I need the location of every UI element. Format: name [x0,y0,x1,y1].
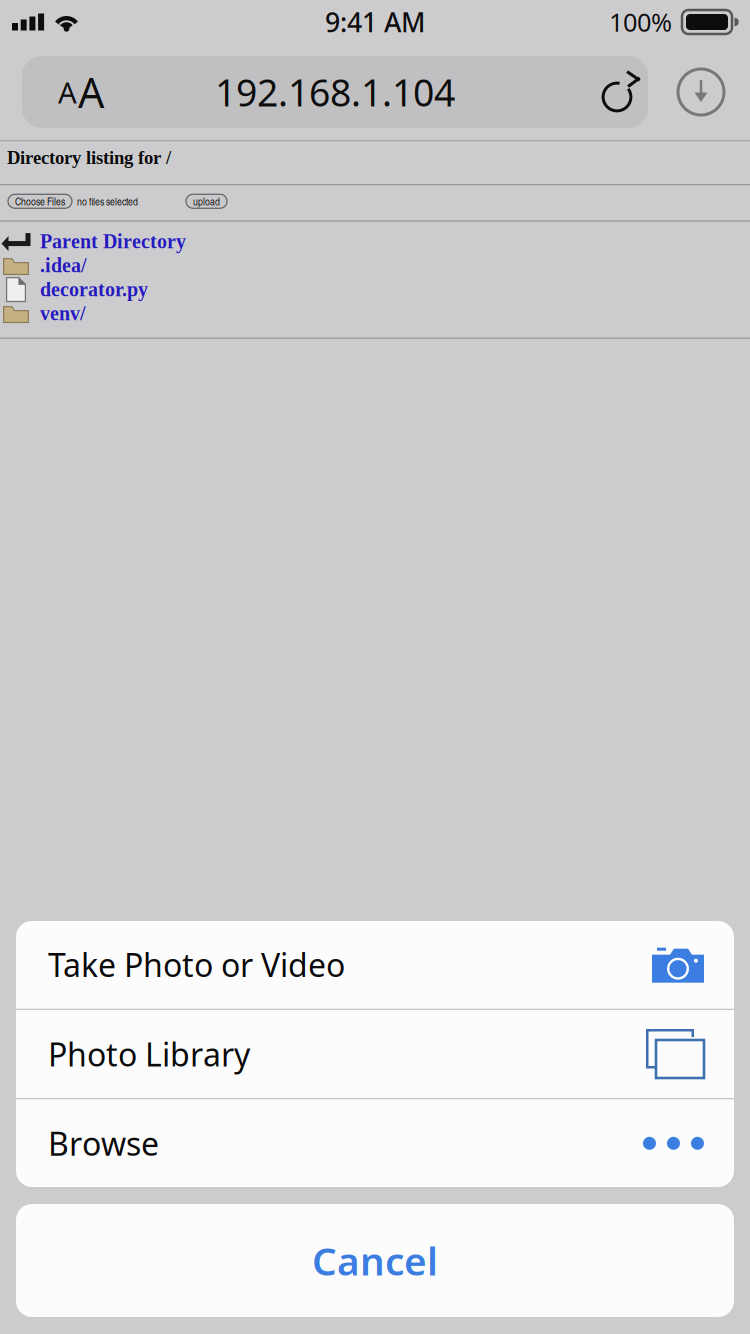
staticText: Parent Directory [40,230,186,253]
staticText: .idea/ [40,254,87,277]
button[interactable]: venv/ [0,302,750,326]
button[interactable]: Photo Library [16,1010,734,1098]
button[interactable]: Cancel [16,1204,734,1317]
staticText: 9:41 AM [325,4,425,40]
button[interactable]: Reload [590,60,646,124]
staticText: Photo Library [48,1033,250,1075]
staticText: A [58,72,77,111]
button[interactable]: upload [186,194,227,208]
staticText: Take Photo or Video [48,943,345,986]
button[interactable]: Page settings [52,70,110,114]
staticText: decorator.py [40,278,148,301]
button[interactable]: Browse [16,1099,734,1187]
staticText: venv/ [40,302,86,325]
button[interactable]: .idea/ [0,254,750,278]
button[interactable]: Parent Directory [0,230,750,254]
staticText: 100% [609,5,672,39]
staticText: upload [193,194,220,209]
staticText: Browse [48,1122,159,1165]
button[interactable]: Take Photo or Video [16,921,734,1009]
button[interactable]: decorator.py [0,278,750,302]
button[interactable]: 192.168.1.104 [145,64,525,120]
staticText: no files selected [77,194,138,209]
staticText: Cancel [312,1235,438,1286]
staticText: Directory listing for / [7,147,171,168]
button[interactable]: Choose Files [8,194,72,208]
staticText: A [78,65,104,119]
button[interactable]: Downloads [678,69,724,115]
staticText: 192.168.1.104 [215,67,455,117]
staticText: Choose Files [15,194,65,209]
